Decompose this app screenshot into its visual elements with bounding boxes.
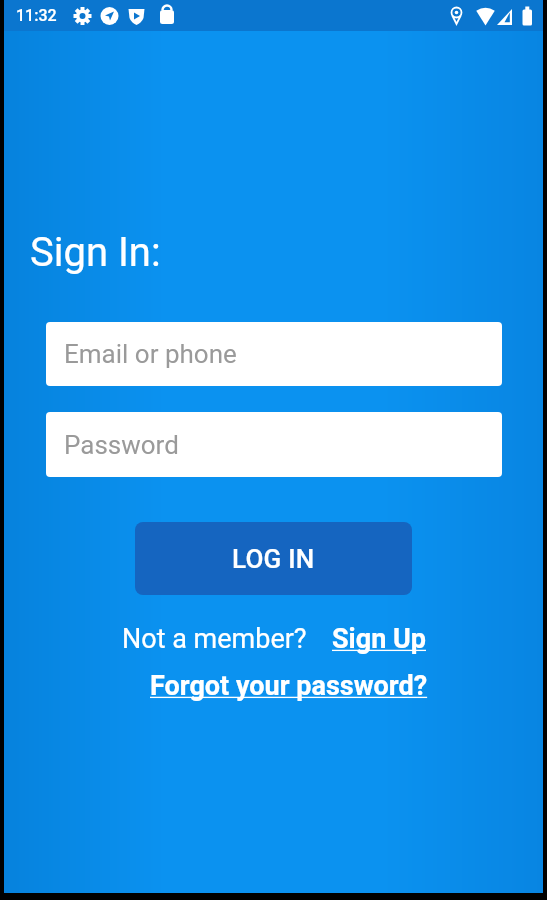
button[interactable]: Password bbox=[46, 412, 502, 477]
staticText: LOG IN bbox=[232, 544, 315, 574]
button[interactable]: LOG IN bbox=[135, 522, 412, 595]
button[interactable]: Forgot your password? bbox=[150, 670, 428, 702]
staticText: Password bbox=[64, 430, 179, 460]
staticText: 11:32 bbox=[16, 6, 57, 25]
staticText: Not a member? bbox=[122, 623, 307, 655]
button[interactable]: Email or phone bbox=[46, 322, 502, 386]
staticText: Email or phone bbox=[64, 339, 237, 369]
staticText: Sign In: bbox=[30, 229, 161, 276]
button[interactable]: Sign Up bbox=[332, 623, 426, 655]
